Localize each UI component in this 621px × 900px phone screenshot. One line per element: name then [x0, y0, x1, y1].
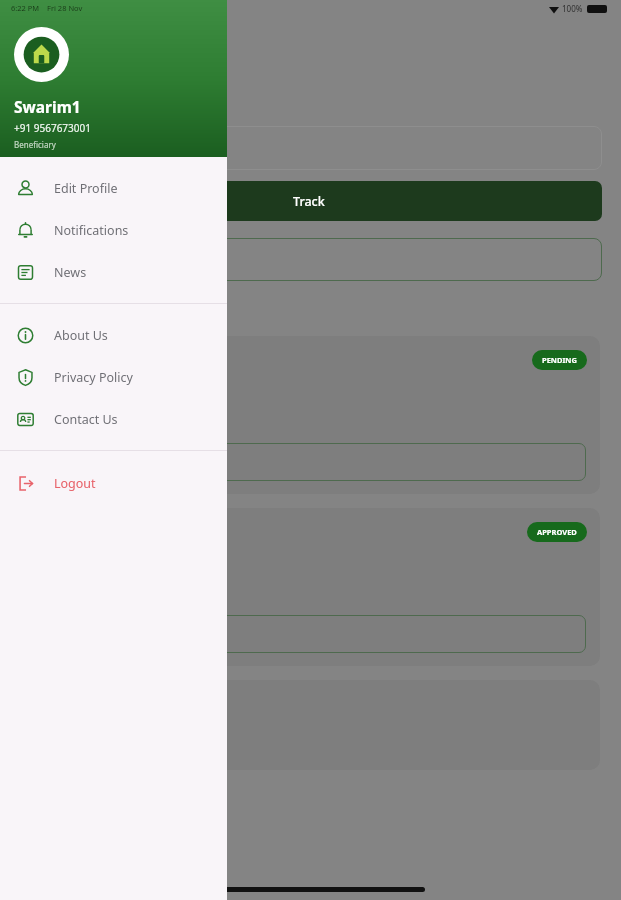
- button[interactable]: About Us: [0, 314, 227, 356]
- button[interactable]: View Details: [26, 443, 586, 481]
- button[interactable]: ning: [12, 508, 600, 666]
- button[interactable]: Contact Us: [0, 398, 227, 440]
- staticText: Notifications: [54, 222, 129, 239]
- staticText: Track: [293, 193, 325, 210]
- button[interactable]: Logout: [0, 462, 227, 504]
- staticText: ram: [26, 349, 57, 371]
- staticText: APPROVED: [537, 527, 577, 537]
- staticText: 100%: [562, 3, 583, 14]
- staticText: About Us: [54, 327, 108, 344]
- staticText: Fri 28 Nov: [47, 3, 83, 13]
- staticText: Contact Us: [54, 411, 118, 428]
- staticText: News: [54, 264, 87, 281]
- staticText: Swarim1: [14, 96, 81, 117]
- staticText: Edit Profile: [54, 180, 118, 197]
- button[interactable]: Track: [16, 181, 602, 221]
- button[interactable]: Privacy Policy: [0, 356, 227, 398]
- button[interactable]: Edit Profile: [0, 167, 227, 209]
- staticText: 6:22 PM: [11, 3, 40, 13]
- button[interactable]: Notifications: [0, 209, 227, 251]
- staticText: +91 9567673001: [14, 121, 91, 135]
- staticText: Logout: [54, 475, 96, 492]
- button[interactable]: Browse All Schemes: [12, 238, 602, 281]
- staticText: Privacy Policy: [54, 369, 133, 386]
- button[interactable]: ram: [12, 336, 600, 494]
- staticText: PENDING: [542, 355, 577, 365]
- button[interactable]: View Details: [26, 615, 586, 653]
- button[interactable]: News: [0, 251, 227, 293]
- staticText: Beneficiary: [14, 139, 56, 150]
